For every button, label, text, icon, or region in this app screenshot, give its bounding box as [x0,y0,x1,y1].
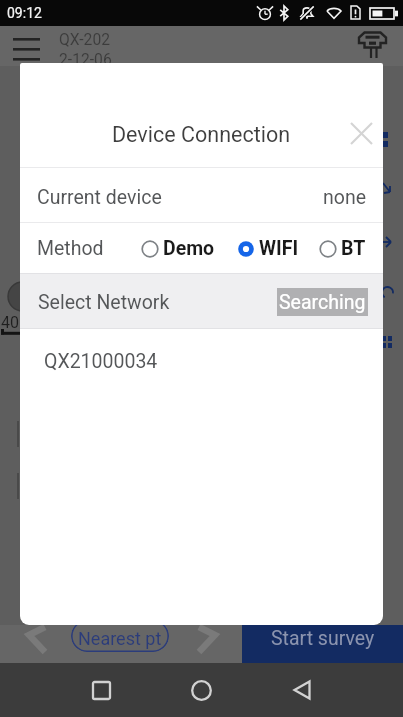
button[interactable]: Previous point [22,621,52,651]
staticText: WIFI [259,237,299,260]
staticText: 09:12 [7,5,42,21]
staticText: Method [37,237,104,260]
button[interactable]: Import [381,181,403,201]
staticText: QX21000034 [44,350,158,373]
button[interactable]: BT [319,232,366,265]
staticText: Current device [37,186,162,209]
button[interactable]: WIFI [237,232,299,265]
button[interactable]: Home [177,666,225,714]
staticText: none [323,186,366,209]
button[interactable]: Recents [77,666,125,714]
staticText: Start survey [271,627,375,650]
staticText: Select Network [38,291,170,314]
staticText: BT [341,237,366,260]
staticText: 2-12-06 [59,50,112,68]
button[interactable]: Menu [13,38,40,68]
button[interactable]: Start survey [242,625,403,663]
staticText: QX-202 [59,30,111,48]
button[interactable]: Instrument [357,30,388,62]
button[interactable]: Next point [192,621,222,651]
button[interactable]: Undo [381,283,403,303]
button[interactable]: Close [338,110,383,156]
staticText: Device Connection [112,122,291,147]
staticText: Searching [279,291,366,314]
button[interactable]: Export [381,232,403,252]
button[interactable]: Back [278,666,326,714]
button[interactable]: QX21000034 [20,329,383,393]
button[interactable]: Searching [277,288,368,316]
button[interactable]: Grid [381,334,403,354]
staticText: Demo [163,237,215,260]
button[interactable]: Demo [141,232,215,265]
staticText: Nearest pt [78,628,162,649]
button[interactable]: Layers [381,130,403,150]
staticText: 405 [1,313,28,332]
button[interactable]: Current device [20,168,383,222]
button[interactable]: Nearest pt [71,620,169,652]
